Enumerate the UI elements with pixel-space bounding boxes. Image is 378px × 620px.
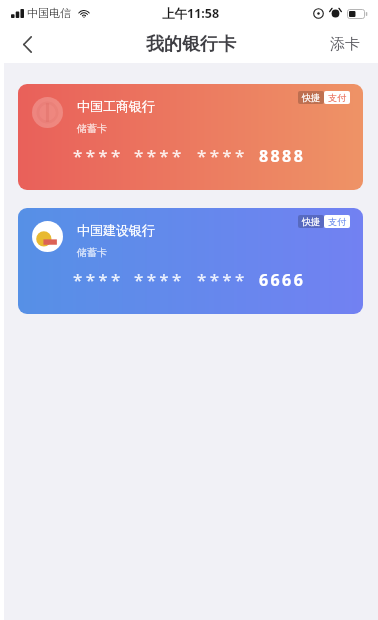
button[interactable]: 快捷 xyxy=(18,84,363,190)
button[interactable]: Back xyxy=(4,26,50,63)
staticText: 8888 xyxy=(259,145,306,167)
staticText: 支付 xyxy=(328,216,346,227)
staticText: **** xyxy=(134,268,185,291)
staticText: 添卡 xyxy=(330,35,360,54)
staticText: 快捷 xyxy=(302,92,320,103)
staticText: 中国电信 xyxy=(27,6,71,20)
button[interactable]: 添卡 xyxy=(316,26,378,63)
staticText: **** xyxy=(73,144,124,167)
staticText: **** xyxy=(73,268,124,291)
staticText: 中国工商银行 xyxy=(77,98,155,114)
staticText: **** xyxy=(134,144,185,167)
staticText: 储蓄卡 xyxy=(77,246,107,259)
staticText: 6666 xyxy=(259,269,306,291)
staticText: **** xyxy=(197,144,248,167)
staticText: 上午11:58 xyxy=(162,5,220,22)
staticText: **** xyxy=(197,268,248,291)
button[interactable]: 快捷 xyxy=(18,208,363,314)
staticText: 快捷 xyxy=(302,216,320,227)
staticText: 储蓄卡 xyxy=(77,122,107,135)
staticText: 中国建设银行 xyxy=(77,222,155,238)
staticText: 支付 xyxy=(328,92,346,103)
staticText: 我的银行卡 xyxy=(146,33,236,56)
